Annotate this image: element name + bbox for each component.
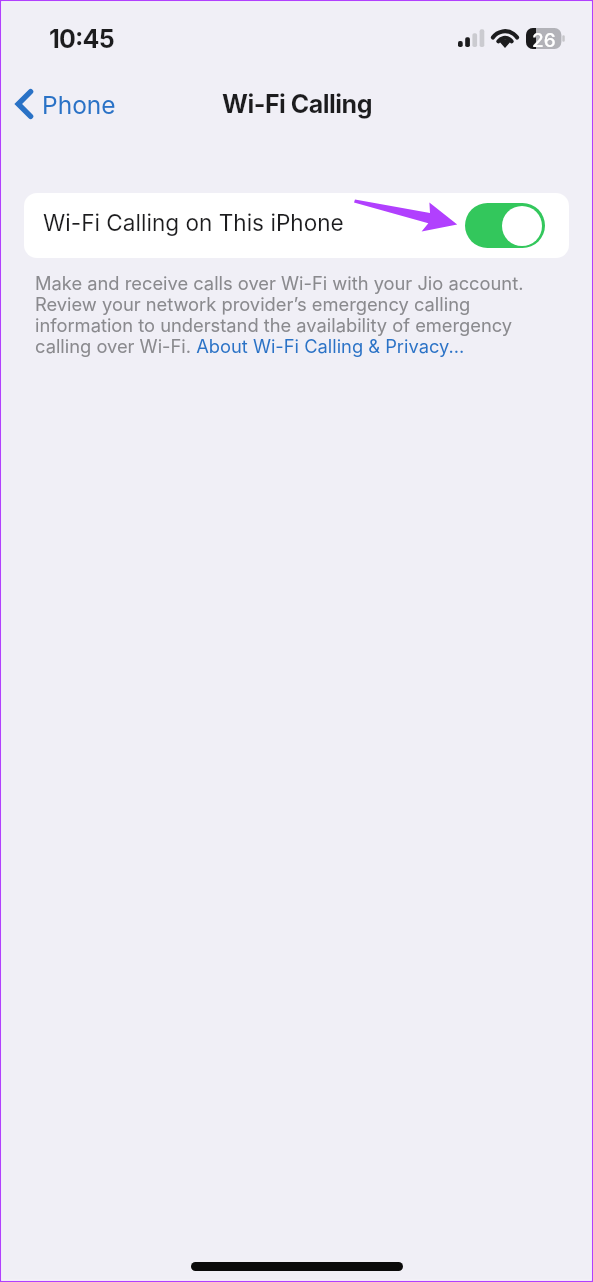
staticText: Make and receive calls over Wi-Fi with y… xyxy=(35,272,563,357)
staticText: Phone xyxy=(42,90,116,120)
button[interactable]: Wi-Fi Calling on This iPhone xyxy=(24,193,569,258)
staticText: Wi-Fi Calling xyxy=(222,89,372,119)
button[interactable]: Back to Phone xyxy=(10,83,122,125)
staticText: 10:45 xyxy=(49,24,114,54)
staticText: Wi-Fi Calling on This iPhone xyxy=(43,209,344,236)
button[interactable]: About Wi-Fi Calling & Privacy xyxy=(197,337,463,360)
staticText: 26 xyxy=(532,29,556,50)
button[interactable]: Wi-Fi Calling toggle, on xyxy=(465,203,545,248)
